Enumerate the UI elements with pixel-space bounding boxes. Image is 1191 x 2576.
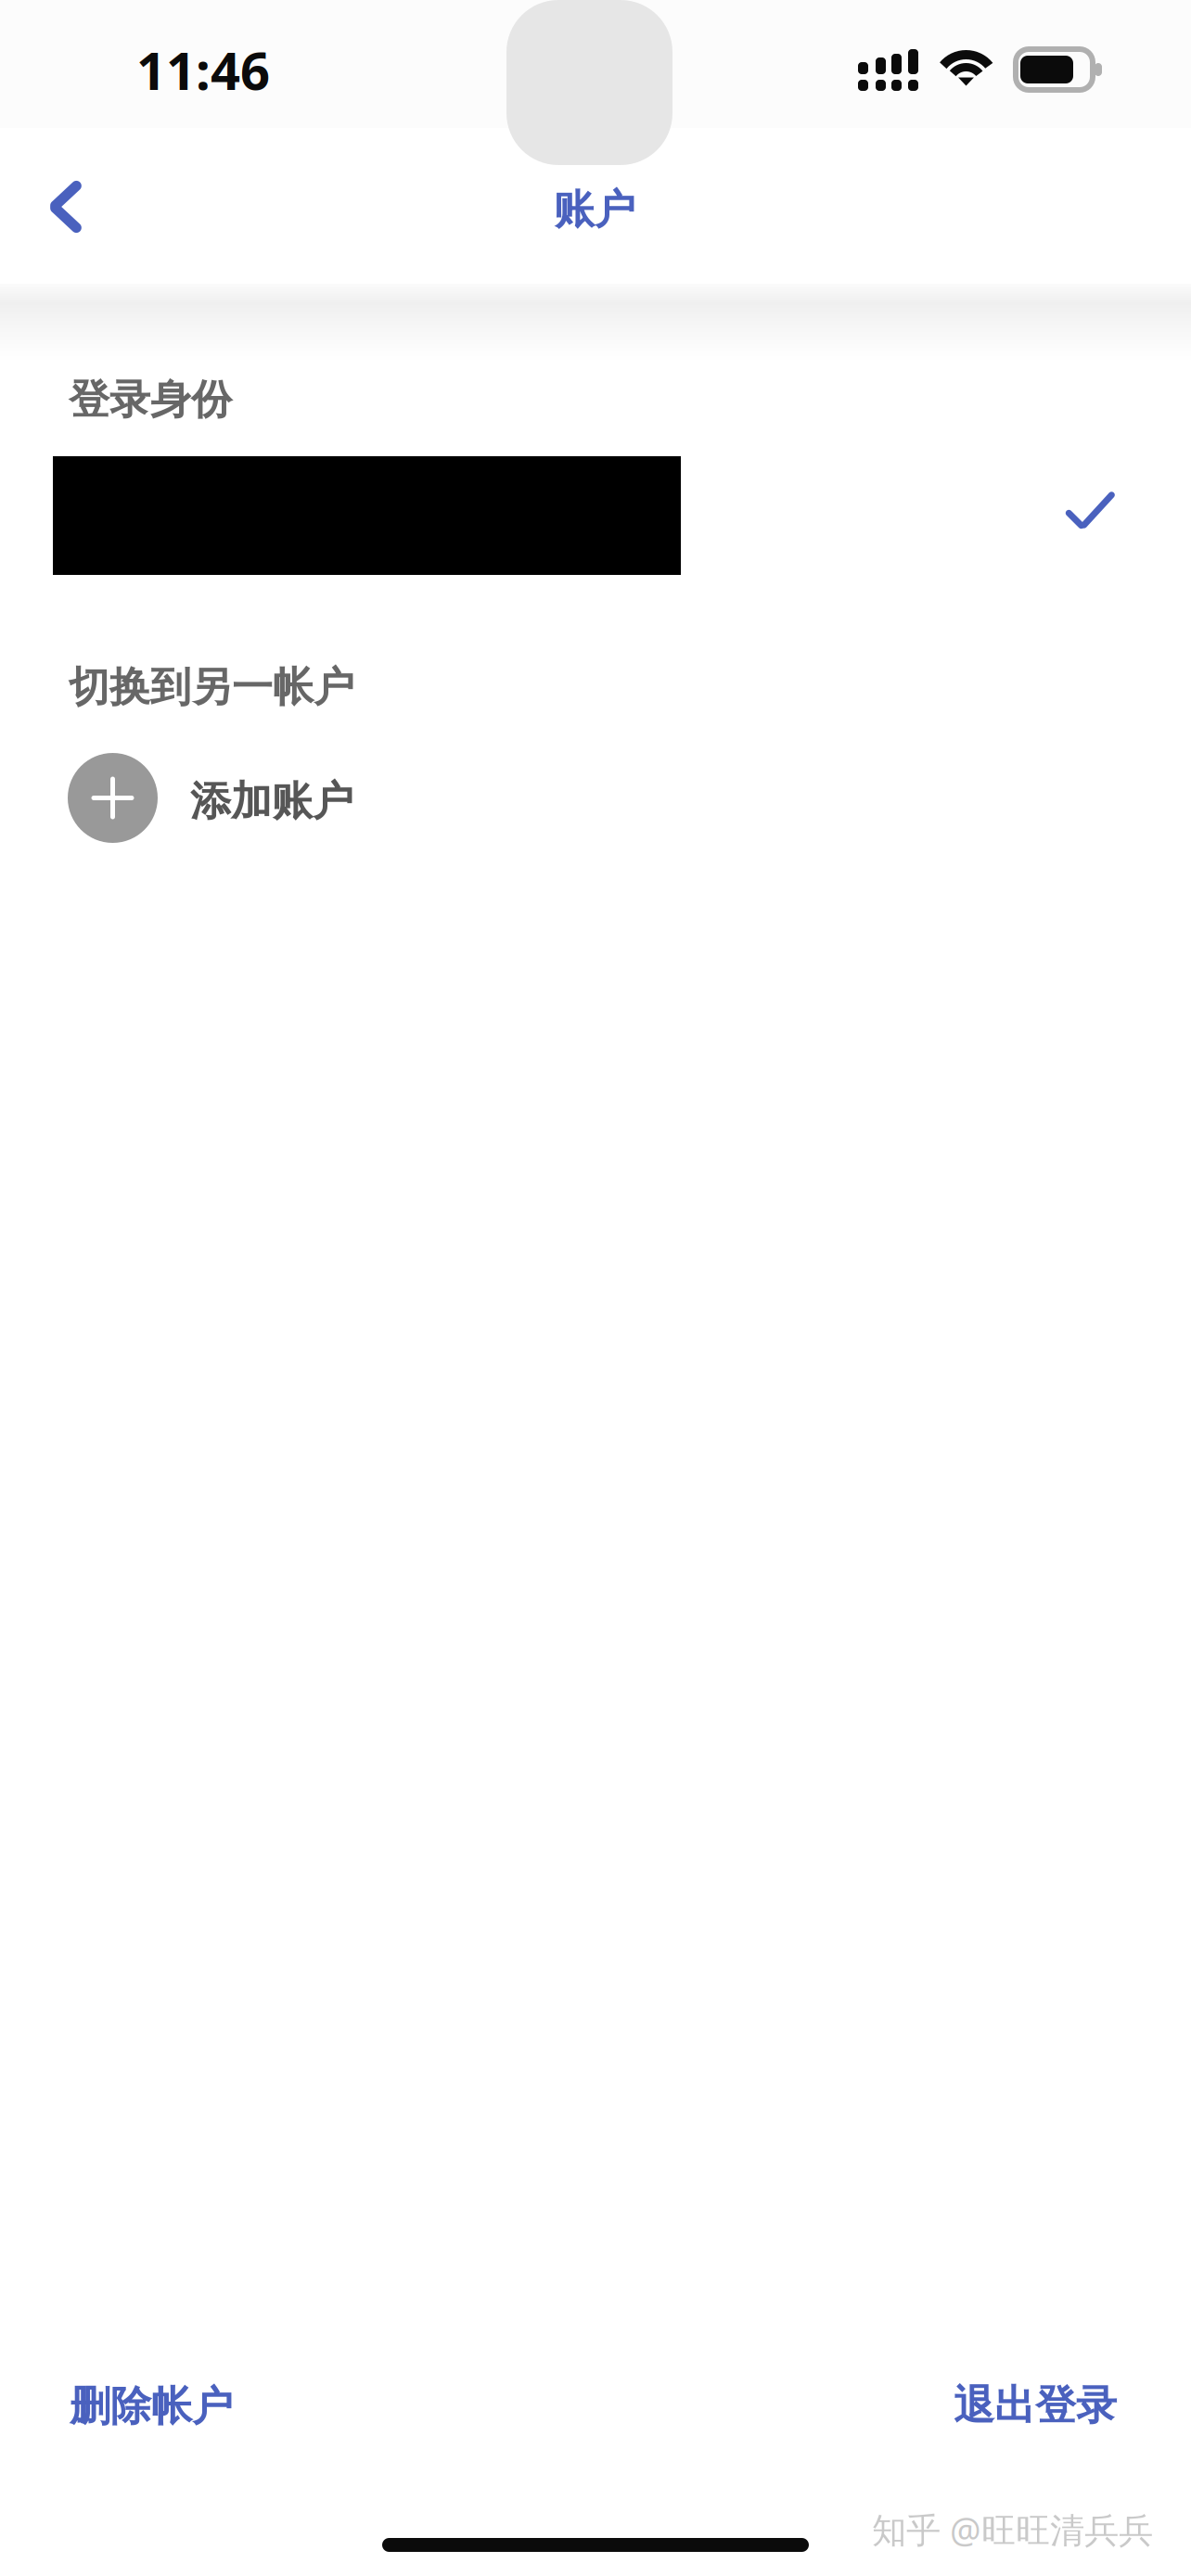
button[interactable] xyxy=(0,441,1191,590)
staticText: 添加账户 xyxy=(190,776,353,826)
staticText: 删除帐户 xyxy=(70,2381,233,2431)
staticText: 退出登录 xyxy=(954,2380,1117,2430)
staticText: 切换到另一帐户 xyxy=(69,662,354,712)
staticText: 11:46 xyxy=(136,35,270,104)
staticText: 账户 xyxy=(554,185,635,235)
button[interactable]: 账户 xyxy=(526,162,663,257)
button[interactable]: Back xyxy=(0,147,121,267)
button[interactable]: 删除帐户 xyxy=(44,2357,259,2455)
staticText: 登录身份 xyxy=(69,375,232,425)
staticText: 知乎 @旺旺清兵兵 xyxy=(872,2506,1153,2552)
button[interactable]: 添加账户 xyxy=(0,740,1191,857)
button[interactable]: 退出登录 xyxy=(928,2356,1143,2455)
